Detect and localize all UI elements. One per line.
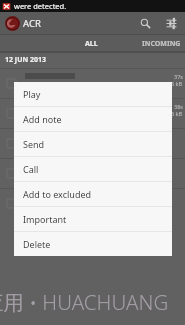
- staticText: Add note: [23, 113, 62, 125]
- button[interactable]: Important: [14, 207, 172, 231]
- staticText: 37s: [174, 73, 183, 80]
- staticText: were detected.: [14, 1, 67, 11]
- button[interactable]: [0, 129, 185, 158]
- button[interactable]: Delete: [14, 232, 172, 256]
- button[interactable]: [0, 159, 185, 188]
- staticText: Call: [23, 163, 39, 175]
- staticText: ACR: [23, 17, 41, 30]
- staticText: 12 JUN 2013: [5, 55, 46, 65]
- button[interactable]: Add note: [14, 107, 172, 131]
- staticText: 38s: [174, 103, 183, 110]
- button[interactable]: Search: [134, 12, 156, 34]
- button[interactable]: Add to excluded: [14, 182, 172, 206]
- staticText: Add to excluded: [23, 188, 92, 200]
- staticText: Delete: [23, 238, 51, 250]
- staticText: INCOMING: [142, 39, 181, 49]
- staticText: Send: [23, 138, 45, 150]
- button[interactable]: Play: [14, 82, 172, 106]
- button[interactable]: [0, 189, 185, 218]
- button[interactable]: Send: [14, 132, 172, 156]
- button[interactable]: INCOMING: [128, 35, 185, 51]
- staticText: 应用 • HUACHUANGZSW: [0, 288, 168, 316]
- button[interactable]: 37s: [0, 69, 185, 98]
- button[interactable]: 38s: [0, 99, 185, 128]
- button[interactable]: Call: [14, 157, 172, 181]
- staticText: ALL: [85, 39, 98, 49]
- staticText: 5 kB: [171, 80, 183, 87]
- staticText: Important: [23, 213, 67, 225]
- staticText: 6 kB: [171, 110, 183, 117]
- button[interactable]: Filter settings: [160, 12, 182, 34]
- staticText: Play: [23, 88, 41, 100]
- button[interactable]: ALL: [55, 35, 128, 51]
